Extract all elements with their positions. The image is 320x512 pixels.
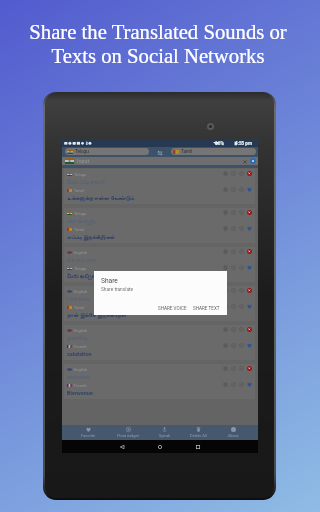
button[interactable]: Input <box>65 157 258 165</box>
button[interactable]: Delete All <box>189 426 208 439</box>
button[interactable]: About <box>227 426 240 439</box>
staticText: Tamil <box>74 305 85 310</box>
button[interactable]: Float widget <box>116 426 140 439</box>
button[interactable]: Copy <box>223 187 228 192</box>
button[interactable]: Favorite <box>247 382 252 387</box>
staticText: French <box>74 383 87 388</box>
button[interactable]: Share <box>231 343 236 348</box>
button[interactable]: Copy <box>223 171 228 176</box>
button[interactable]: Speak <box>239 249 244 254</box>
button[interactable]: Delete <box>247 249 252 254</box>
button[interactable]: Share <box>231 288 236 293</box>
button[interactable]: Copy <box>223 249 228 254</box>
button[interactable]: Back <box>114 440 130 453</box>
button[interactable]: Share <box>231 382 236 387</box>
button[interactable]: Share <box>231 171 236 176</box>
staticText: French <box>74 344 87 349</box>
button[interactable]: Speak <box>239 366 244 371</box>
button[interactable]: Copy <box>223 327 228 332</box>
staticText: Share <box>101 277 118 285</box>
button[interactable]: Telugu <box>65 148 149 155</box>
button[interactable]: SHARE TEXT <box>192 305 221 312</box>
staticText: Telugu <box>74 172 87 177</box>
button[interactable]: Favorite <box>80 426 97 439</box>
staticText: English <box>74 289 88 294</box>
button[interactable]: Telugu <box>64 169 255 204</box>
button[interactable]: Speak <box>239 226 244 231</box>
button[interactable]: Copy <box>223 382 228 387</box>
staticText: welcome <box>67 374 90 380</box>
staticText: Float widget <box>117 433 139 438</box>
button[interactable]: Speak <box>239 210 244 215</box>
button[interactable]: Favorite <box>247 343 252 348</box>
button[interactable]: Favorite <box>247 304 252 309</box>
staticText: Speak <box>159 433 170 438</box>
button[interactable]: Copy <box>223 226 228 231</box>
button[interactable]: Speak <box>239 382 244 387</box>
button[interactable]: Swap languages <box>156 149 164 157</box>
staticText: salutation <box>67 351 92 357</box>
button[interactable]: English <box>64 247 255 282</box>
staticText: SHARE TEXT <box>193 306 220 311</box>
staticText: Telugu <box>74 266 87 271</box>
staticText: Tamil <box>181 149 193 154</box>
staticText: English <box>74 367 88 372</box>
button[interactable]: Delete <box>247 210 252 215</box>
button[interactable]: Copy <box>223 366 228 371</box>
button[interactable]: Speak <box>239 304 244 309</box>
button[interactable]: Speak <box>239 343 244 348</box>
staticText: I am here <box>67 296 90 302</box>
button[interactable]: Favorite <box>247 226 252 231</box>
button[interactable]: Favorite <box>247 187 252 192</box>
button[interactable]: Share <box>231 226 236 231</box>
button[interactable]: English <box>64 364 255 399</box>
button[interactable]: Delete <box>247 171 252 176</box>
staticText: Telugu <box>75 149 89 154</box>
button[interactable]: Speak <box>239 171 244 176</box>
staticText: SHARE VOICE <box>158 306 187 311</box>
button[interactable]: Share <box>231 210 236 215</box>
staticText: English <box>74 250 88 255</box>
staticText: Input <box>77 158 90 164</box>
staticText: 4:55 pm <box>235 141 252 146</box>
staticText: మీరు ఖచ్చితంగా <box>67 273 105 281</box>
button[interactable]: English <box>64 325 255 360</box>
button[interactable]: Delete <box>247 327 252 332</box>
button[interactable]: Speak <box>239 288 244 293</box>
staticText: Telugu <box>74 211 87 216</box>
button[interactable]: Share <box>231 265 236 270</box>
button[interactable]: Copy <box>223 210 228 215</box>
button[interactable]: Delete <box>247 366 252 371</box>
button[interactable]: Recents <box>190 440 206 453</box>
button[interactable]: Home <box>152 440 168 453</box>
button[interactable]: Share <box>231 249 236 254</box>
button[interactable]: Copy <box>223 288 228 293</box>
button[interactable]: English <box>64 286 255 321</box>
staticText: About <box>228 433 239 438</box>
button[interactable]: Delete <box>247 288 252 293</box>
staticText: Delete All <box>190 433 207 438</box>
button[interactable]: Speak <box>239 265 244 270</box>
button[interactable]: Copy <box>223 343 228 348</box>
button[interactable]: Clear <box>241 158 248 165</box>
button[interactable]: Speak <box>158 426 171 439</box>
button[interactable]: Favorite <box>247 265 252 270</box>
button[interactable]: Share <box>231 304 236 309</box>
button[interactable]: Share <box>231 327 236 332</box>
button[interactable]: Translate <box>250 158 256 164</box>
button[interactable]: Copy <box>223 304 228 309</box>
button[interactable]: Speak <box>239 187 244 192</box>
button[interactable]: Copy <box>223 265 228 270</box>
staticText: நான் இங்கே இருக்கிறேன் <box>67 312 127 318</box>
staticText: எப்படி இருக்கிறீர்கள் <box>67 234 115 240</box>
button[interactable]: Telugu <box>64 208 255 243</box>
staticText: greeting <box>67 335 87 341</box>
staticText: ఎలా ఉన్నావు <box>67 218 96 226</box>
staticText: Tamil <box>74 188 85 193</box>
button[interactable]: Speak <box>239 327 244 332</box>
button[interactable]: Share <box>231 187 236 192</box>
button[interactable]: Tamil <box>171 148 256 155</box>
staticText: Favorite <box>81 433 96 438</box>
button[interactable]: SHARE VOICE <box>157 305 188 312</box>
button[interactable]: Share <box>231 366 236 371</box>
